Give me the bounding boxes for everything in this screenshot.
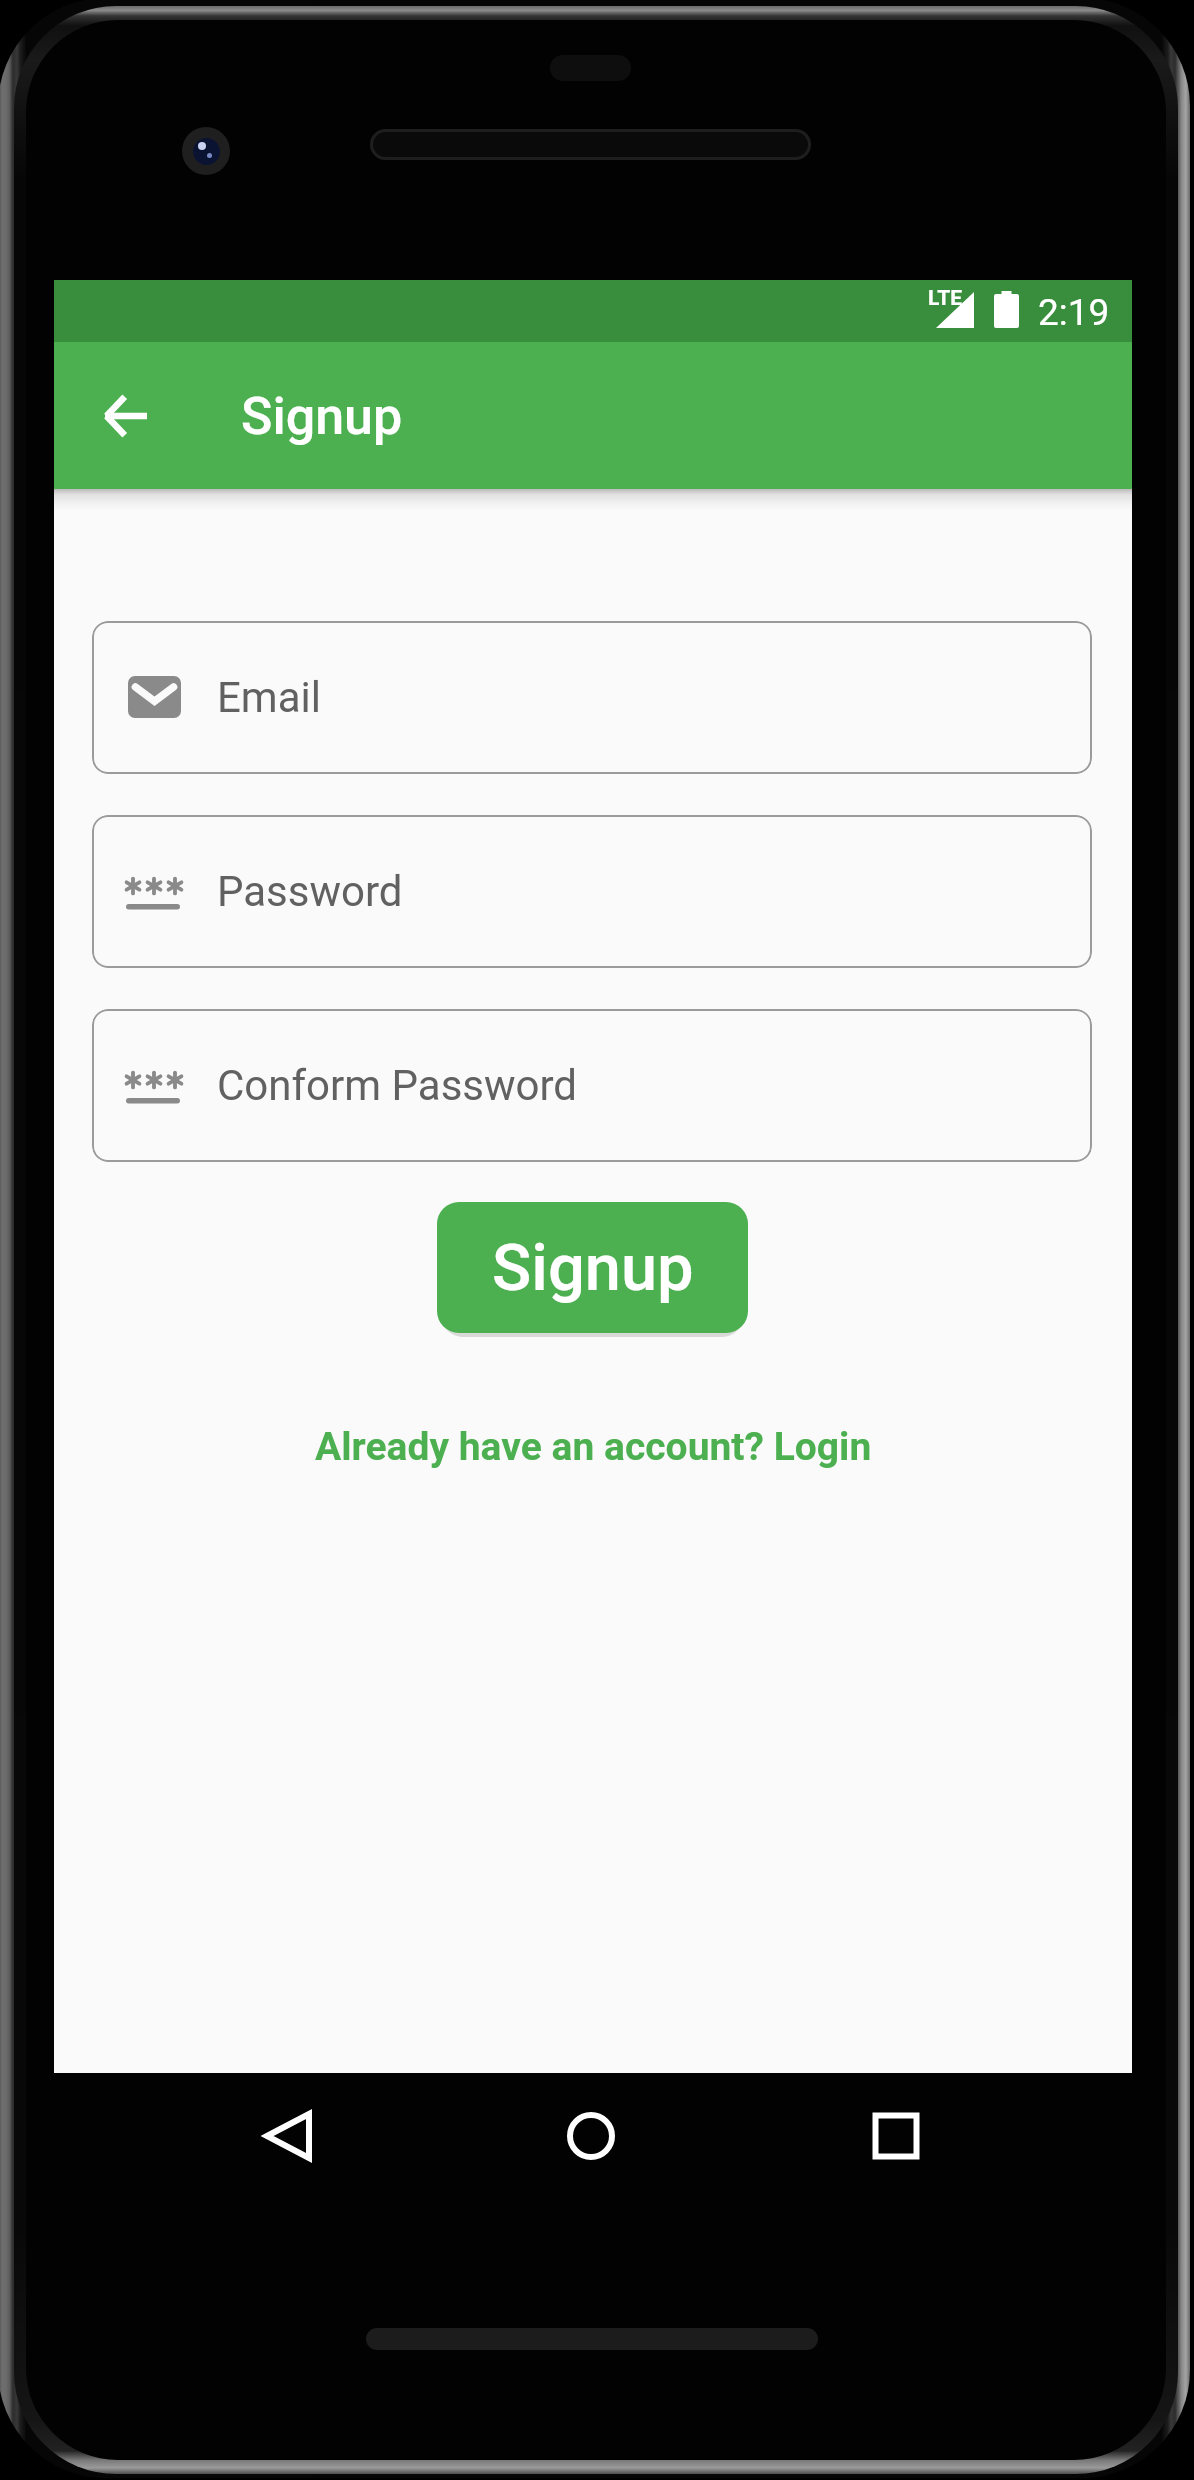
button[interactable]: Password — [92, 815, 1092, 968]
button[interactable]: Already have an account? Login — [315, 1424, 872, 1470]
button[interactable]: Back — [244, 2092, 332, 2180]
staticText: 2:19 — [1038, 291, 1110, 334]
staticText: Email — [217, 673, 321, 722]
staticText: Password — [217, 867, 403, 916]
staticText: Signup — [492, 1230, 694, 1306]
button[interactable]: Conform Password — [92, 1009, 1092, 1162]
staticText: Signup — [241, 386, 403, 447]
button[interactable]: Email — [92, 621, 1092, 774]
staticText: LTE — [928, 286, 963, 311]
button[interactable]: Navigate up — [84, 374, 168, 458]
staticText: Conform Password — [217, 1061, 578, 1110]
button[interactable]: Recent apps — [852, 2092, 940, 2180]
button[interactable]: Signup — [437, 1202, 748, 1333]
button[interactable]: Home — [547, 2092, 635, 2180]
